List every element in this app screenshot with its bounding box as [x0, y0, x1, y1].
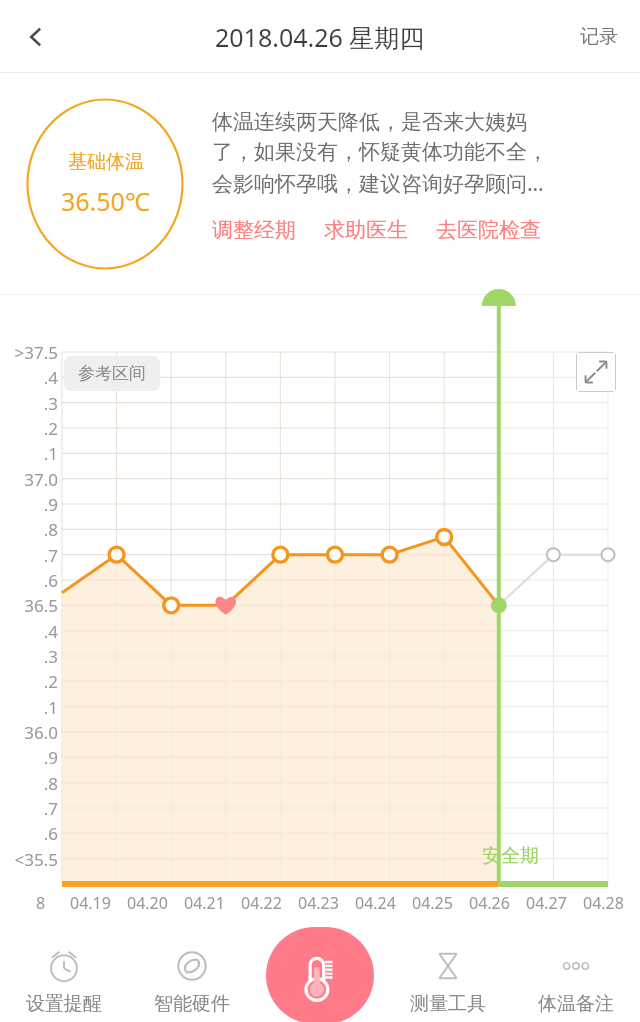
staticText: 04.28 — [583, 892, 624, 914]
staticText: 04.19 — [70, 892, 111, 914]
button[interactable]: 参考区间 — [64, 356, 160, 391]
staticText: .2 — [0, 417, 58, 440]
button[interactable]: 调整经期 — [212, 217, 296, 243]
staticText: 36.50℃ — [61, 184, 150, 218]
staticText: .1 — [0, 442, 58, 465]
button[interactable]: 求助医生 — [324, 217, 408, 243]
staticText: 基础体温 — [68, 150, 144, 174]
staticText: .2 — [0, 670, 58, 693]
staticText: .1 — [0, 696, 58, 719]
staticText: 04.25 — [412, 892, 453, 914]
staticText: .8 — [0, 772, 58, 795]
staticText: 安全期 — [482, 844, 539, 868]
button[interactable]: 设置提醒 — [0, 944, 128, 1022]
button[interactable]: Back — [8, 9, 64, 65]
staticText: 36.5 — [0, 594, 58, 617]
button[interactable]: 基础体温 — [26, 98, 184, 270]
staticText: 体温连续两天降低，是否来大姨妈 了，如果没有，怀疑黄体功能不全， 会影响怀孕哦，… — [212, 109, 548, 197]
staticText: 设置提醒 — [26, 992, 102, 1016]
staticText: .6 — [0, 822, 58, 845]
staticText: 调整经期 — [212, 217, 296, 243]
button[interactable]: Expand chart — [576, 352, 616, 392]
staticText: 04.21 — [184, 892, 225, 914]
staticText: .7 — [0, 797, 58, 820]
button[interactable]: 记录 — [580, 25, 618, 49]
staticText: 体温备注 — [538, 992, 614, 1016]
button[interactable]: 测量工具 — [384, 944, 512, 1022]
staticText: .7 — [0, 544, 58, 567]
staticText: 去医院检查 — [436, 217, 541, 243]
staticText: 04.23 — [298, 892, 339, 914]
staticText: 8 — [36, 892, 46, 914]
staticText: 04.24 — [355, 892, 396, 914]
staticText: .4 — [0, 366, 58, 389]
staticText: .3 — [0, 392, 58, 415]
button[interactable]: 去医院检查 — [436, 217, 541, 243]
button[interactable]: 体温备注 — [512, 944, 640, 1022]
staticText: >37.5 — [0, 341, 58, 364]
staticText: .3 — [0, 645, 58, 668]
staticText: 04.26 — [469, 892, 510, 914]
staticText: .9 — [0, 746, 58, 769]
staticText: .4 — [0, 620, 58, 643]
staticText: 参考区间 — [78, 363, 146, 384]
staticText: 测量工具 — [410, 992, 486, 1016]
staticText: 37.0 — [0, 468, 58, 491]
staticText: 04.27 — [526, 892, 567, 914]
staticText: .6 — [0, 569, 58, 592]
staticText: .8 — [0, 518, 58, 541]
staticText: <35.5 — [0, 848, 58, 871]
staticText: 36.0 — [0, 721, 58, 744]
button[interactable]: Record temperature — [266, 927, 374, 1022]
staticText: 求助医生 — [324, 217, 408, 243]
staticText: .9 — [0, 493, 58, 516]
staticText: 智能硬件 — [154, 992, 230, 1016]
staticText: 2018.04.26 星期四 — [215, 20, 425, 54]
button[interactable]: 智能硬件 — [128, 944, 256, 1022]
staticText: 记录 — [580, 25, 618, 49]
staticText: 04.22 — [241, 892, 282, 914]
staticText: 04.20 — [127, 892, 168, 914]
